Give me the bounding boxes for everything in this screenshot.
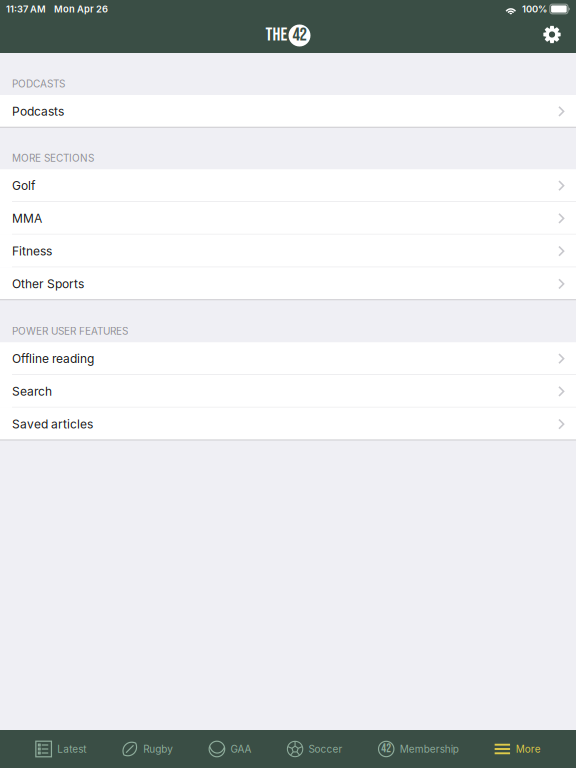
staticText: Mon Apr 26 <box>54 3 108 15</box>
staticText: Podcasts <box>12 104 64 119</box>
staticText: 42 <box>381 742 391 756</box>
button[interactable]: More <box>494 730 541 768</box>
button[interactable]: Offline reading <box>0 342 576 375</box>
button[interactable]: Settings <box>531 18 576 53</box>
staticText: 100% <box>522 3 547 15</box>
button[interactable]: Fitness <box>0 235 576 268</box>
button[interactable]: Latest <box>35 730 86 768</box>
staticText: Golf <box>12 178 35 193</box>
staticText: Offline reading <box>12 351 94 366</box>
staticText: Other Sports <box>12 277 84 291</box>
button[interactable]: MMA <box>0 202 576 235</box>
button[interactable]: Soccer <box>287 730 343 768</box>
staticText: POWER USER FEATURES <box>12 325 128 337</box>
button[interactable]: Rugby <box>121 730 173 768</box>
staticText: Saved articles <box>12 417 93 431</box>
staticText: MMA <box>12 211 42 226</box>
button[interactable]: Golf <box>0 169 576 202</box>
staticText: PODCASTS <box>12 78 65 90</box>
button[interactable]: Saved articles <box>0 408 576 441</box>
staticText: Soccer <box>309 743 343 755</box>
staticText: 11:37 AM <box>6 3 46 15</box>
staticText: GAA <box>230 743 251 755</box>
staticText: Rugby <box>143 743 173 755</box>
button[interactable]: 42 <box>378 730 459 768</box>
staticText: Fitness <box>12 244 52 258</box>
staticText: 42 <box>292 24 306 46</box>
staticText: Membership <box>400 743 459 755</box>
staticText: MORE SECTIONS <box>12 152 94 164</box>
staticText: More <box>516 743 541 755</box>
button[interactable]: Other Sports <box>0 267 576 300</box>
button[interactable]: GAA <box>208 730 251 768</box>
staticText: Latest <box>57 743 86 755</box>
staticText: THE <box>265 24 287 46</box>
button[interactable]: Podcasts <box>0 95 576 128</box>
staticText: Search <box>12 384 52 399</box>
button[interactable]: Search <box>0 375 576 408</box>
